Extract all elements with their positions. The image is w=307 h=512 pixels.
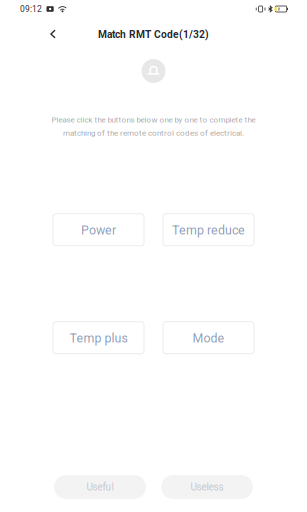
button[interactable]: Back <box>38 17 68 49</box>
staticText: Mode <box>192 331 224 345</box>
button[interactable]: Useless <box>161 475 253 499</box>
staticText: Power <box>81 223 116 237</box>
staticText: Temp plus <box>69 331 127 345</box>
button[interactable]: Mode <box>163 322 254 354</box>
staticText: Temp reduce <box>172 223 245 237</box>
staticText: Useless <box>190 481 223 493</box>
button[interactable]: Temp plus <box>53 322 144 354</box>
button[interactable]: Useful <box>54 475 146 499</box>
staticText: 09:12 <box>20 4 42 14</box>
staticText: Useful <box>86 481 113 493</box>
button[interactable]: Temp reduce <box>163 214 254 246</box>
staticText: matching of the remote control codes of … <box>63 128 244 138</box>
staticText: Match RMT Code(1/32) <box>98 28 209 40</box>
button[interactable]: Power <box>53 214 144 246</box>
staticText: Please click the buttons below one by on… <box>51 115 255 124</box>
